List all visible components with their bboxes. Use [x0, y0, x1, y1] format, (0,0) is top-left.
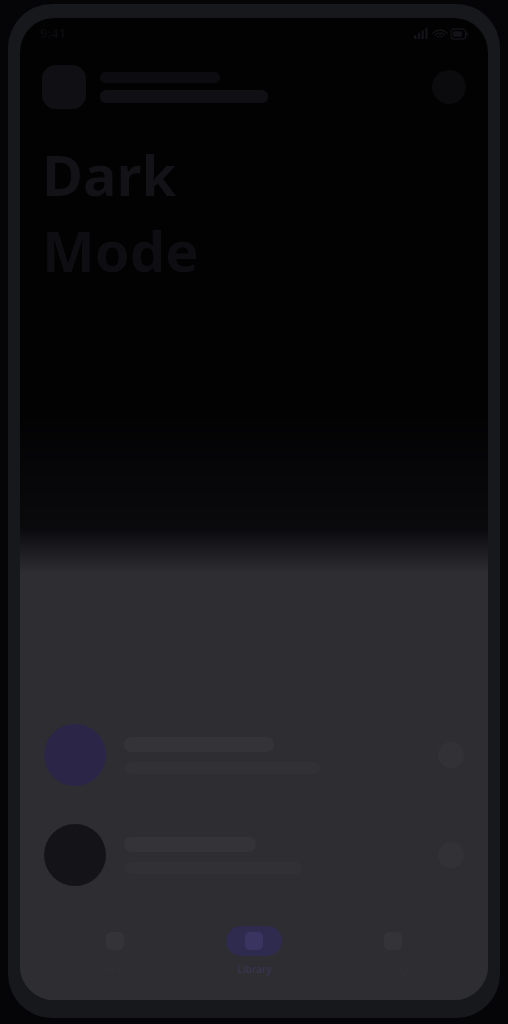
- staticText: Mode: [42, 212, 199, 288]
- staticText: Dark: [42, 136, 177, 212]
- button[interactable]: More options: [432, 70, 466, 104]
- button[interactable]: Profile: [42, 65, 86, 109]
- staticText: Library: [237, 962, 272, 976]
- button[interactable]: Library: [210, 920, 298, 982]
- staticText: 9:41: [40, 24, 66, 42]
- button[interactable]: [20, 718, 488, 792]
- button[interactable]: [20, 818, 488, 892]
